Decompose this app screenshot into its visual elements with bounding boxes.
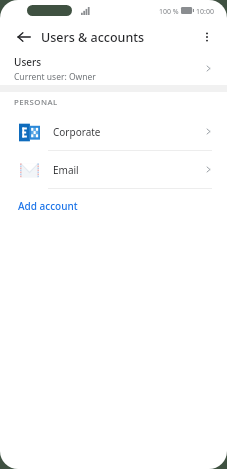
staticText: 100 % [159, 7, 179, 17]
staticText: Corporate [53, 125, 101, 139]
staticText: Users & accounts [41, 29, 145, 46]
staticText: PERSONAL [14, 97, 58, 108]
staticText: Current user: Owner [14, 71, 96, 83]
button[interactable]: Corporate [0, 113, 227, 150]
button[interactable]: Email [0, 151, 227, 188]
button[interactable]: Back [10, 23, 38, 51]
button[interactable]: Add account [0, 189, 227, 222]
button[interactable]: Users [0, 52, 227, 85]
staticText: Users [14, 55, 42, 69]
staticText: Add account [18, 199, 78, 213]
button[interactable]: More options [194, 24, 220, 50]
staticText: Email [53, 163, 79, 177]
staticText: 10:00 [196, 7, 214, 17]
